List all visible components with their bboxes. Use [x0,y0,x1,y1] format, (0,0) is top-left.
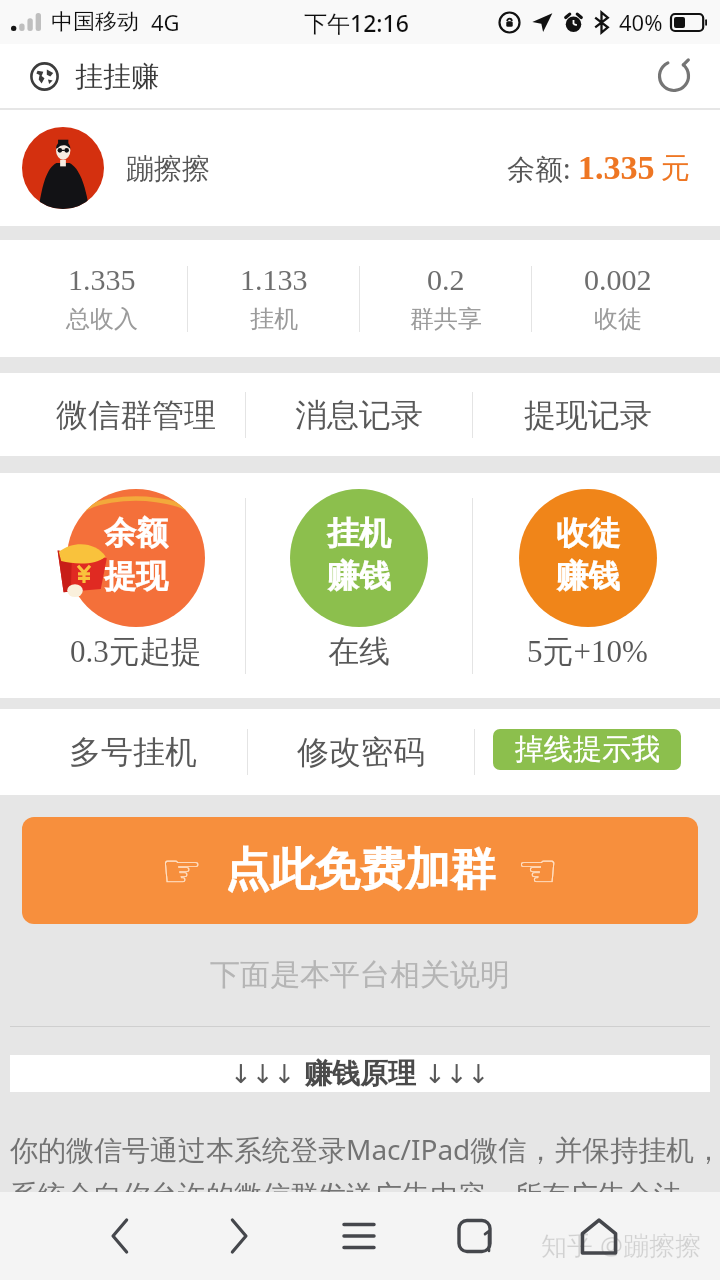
staticText: 在线 [328,632,390,671]
staticText: 挂机 [250,304,298,334]
staticText: 4G [151,7,180,37]
staticText: 1.133 [240,263,308,296]
button[interactable]: 蹦擦擦 [0,110,720,226]
staticText: 蹦擦擦 [126,151,210,186]
staticText: 收徒 [556,513,620,553]
button[interactable]: 余额 [13,467,258,692]
button[interactable]: 消息记录 [246,373,472,456]
button[interactable]: 挂机 [246,467,472,692]
button[interactable]: ↓↓↓ [10,1055,710,1092]
staticText: 修改密码 [297,732,425,772]
staticText: 消息记录 [295,395,423,435]
staticText: ↓↓↓ [424,1059,490,1089]
button[interactable]: ☞ [22,817,698,924]
staticText: 多号挂机 [69,732,197,772]
button[interactable]: Home [539,1192,659,1280]
staticText: 0.2 [427,263,465,296]
button[interactable]: Forward [179,1192,299,1280]
staticText: 提现记录 [524,395,652,435]
staticText: 赚钱原理 [304,1056,416,1091]
staticText: 赚钱 [556,556,620,596]
staticText: 元 [661,150,690,187]
staticText: 群共享 [410,304,482,334]
staticText: 点此免费加群 [225,842,495,899]
button[interactable]: 0.002 [532,240,703,357]
staticText: 5元+10% [527,632,648,671]
staticText: 1.335 [68,263,136,296]
staticText: 微信群管理 [56,395,216,435]
staticText: 中国移动 [51,8,139,36]
staticText: 挂机 [327,513,391,553]
button[interactable]: Refresh [650,52,698,100]
staticText: 挂挂赚 [75,59,159,94]
staticText: 知乎 @蹦擦擦 [541,1227,702,1263]
staticText: 收徒 [594,304,642,334]
button[interactable]: 修改密码 [248,709,474,795]
staticText: 你的微信号通过本系统登录Mac/IPad微信，并保持挂机， [10,1130,710,1168]
button[interactable]: 1.335 [17,240,187,357]
staticText: ☞ [161,844,203,898]
staticText: 1.335 [578,149,655,187]
staticText: 0.3元起提 [70,632,202,671]
staticText: 赚钱 [327,556,391,596]
button[interactable]: Menu [299,1192,419,1280]
staticText: 总收入 [66,304,138,334]
button[interactable]: 多号挂机 [0,709,247,795]
staticText: 余额: [507,149,571,187]
button[interactable]: 0.2 [360,240,531,357]
staticText: 掉线提示我 [515,731,660,768]
button[interactable]: 微信群管理 [0,373,245,456]
staticText: 0.002 [584,263,652,296]
button[interactable]: Tabs [419,1192,539,1280]
staticText: 余额 [104,513,168,553]
staticText: 提现 [104,556,168,596]
button[interactable]: 收徒 [464,467,711,692]
staticText: 下午12:16 [304,7,409,38]
button[interactable]: Back [59,1192,179,1280]
button[interactable]: 提现记录 [473,373,720,456]
button[interactable]: 掉线提示我 [493,729,681,770]
staticText: 系统会向你允许的微信群发送广告内容，所有广告合法 [10,1178,682,1213]
staticText: ☜ [517,844,559,898]
staticText: 40% [619,7,663,37]
staticText: ↓↓↓ [230,1059,296,1089]
staticText: 下面是本平台相关说明 [210,956,510,994]
button[interactable]: 1.133 [188,240,359,357]
